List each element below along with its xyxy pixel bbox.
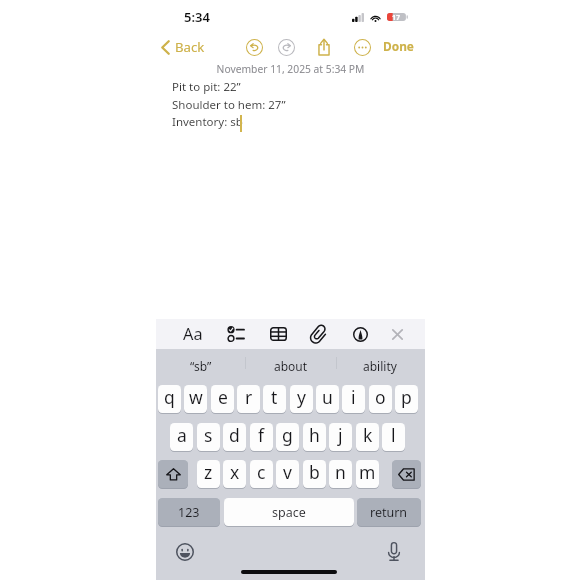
button[interactable]: w xyxy=(184,385,207,413)
button[interactable]: v xyxy=(276,460,299,488)
button[interactable]: s xyxy=(197,423,220,451)
staticText: q xyxy=(164,385,175,409)
staticText: l xyxy=(391,423,396,447)
staticText: n xyxy=(335,460,346,484)
staticText: r xyxy=(245,385,253,409)
button[interactable]: i xyxy=(342,385,365,413)
button[interactable]: Attach xyxy=(303,319,333,349)
staticText: t xyxy=(271,385,278,409)
button[interactable]: Close xyxy=(382,319,412,349)
button[interactable]: Markup xyxy=(345,319,375,349)
staticText: 123 xyxy=(178,504,200,521)
button[interactable]: Checklist xyxy=(220,319,250,349)
staticText: a xyxy=(177,423,187,447)
staticText: space xyxy=(272,504,306,521)
button[interactable]: Back xyxy=(161,34,205,60)
button[interactable]: Done xyxy=(383,35,414,59)
button[interactable]: c xyxy=(250,460,273,488)
staticText: November 11, 2025 at 5:34 PM xyxy=(156,62,425,76)
staticText: Inventory: sb xyxy=(172,114,243,130)
button[interactable]: ability xyxy=(336,354,424,377)
button[interactable]: Emoji xyxy=(172,539,198,565)
staticText: k xyxy=(363,423,373,447)
button[interactable]: k xyxy=(356,423,379,451)
button[interactable]: Dictate xyxy=(381,539,407,565)
staticText: ability xyxy=(363,358,397,374)
button[interactable]: q xyxy=(158,385,181,413)
button[interactable]: Numbers xyxy=(158,498,220,526)
button[interactable]: Shift xyxy=(158,460,188,488)
button[interactable]: about xyxy=(247,354,335,377)
staticText: i xyxy=(351,385,356,409)
button[interactable]: l xyxy=(382,423,405,451)
button[interactable]: x xyxy=(223,460,246,488)
button[interactable]: Share xyxy=(312,35,336,59)
button[interactable]: Backspace xyxy=(392,460,421,488)
button[interactable]: t xyxy=(263,385,286,413)
staticText: p xyxy=(401,385,412,409)
staticText: f xyxy=(258,423,265,447)
button[interactable]: “sb” xyxy=(157,354,245,377)
button[interactable]: Table xyxy=(263,319,293,349)
staticText: 17 xyxy=(392,13,401,21)
button[interactable]: b xyxy=(303,460,326,488)
staticText: d xyxy=(229,423,240,447)
staticText: w xyxy=(189,385,203,409)
staticText: h xyxy=(309,423,320,447)
button[interactable]: f xyxy=(250,423,273,451)
button[interactable]: g xyxy=(276,423,299,451)
staticText: Shoulder to hem: 27” xyxy=(172,97,286,113)
staticText: Back xyxy=(175,38,205,56)
staticText: y xyxy=(297,385,306,409)
staticText: Done xyxy=(383,38,414,54)
staticText: m xyxy=(359,460,376,484)
staticText: s xyxy=(204,423,213,447)
button[interactable]: Return xyxy=(357,498,421,526)
staticText: x xyxy=(230,460,240,484)
staticText: j xyxy=(338,423,343,447)
staticText: Pit to pit: 22” xyxy=(172,79,241,95)
staticText: return xyxy=(370,504,408,521)
staticText: Aa xyxy=(183,323,203,345)
staticText: g xyxy=(282,423,293,447)
button[interactable]: p xyxy=(395,385,418,413)
button[interactable]: Undo xyxy=(242,35,266,59)
button[interactable]: r xyxy=(237,385,260,413)
button[interactable]: j xyxy=(329,423,352,451)
button[interactable]: u xyxy=(316,385,339,413)
button[interactable]: h xyxy=(303,423,326,451)
button[interactable]: e xyxy=(211,385,234,413)
button[interactable]: n xyxy=(329,460,352,488)
button[interactable]: More xyxy=(350,35,374,59)
button[interactable]: a xyxy=(170,423,193,451)
button[interactable]: Format xyxy=(178,319,208,349)
button[interactable]: m xyxy=(356,460,379,488)
button[interactable]: z xyxy=(197,460,220,488)
staticText: about xyxy=(274,358,308,374)
button[interactable]: Redo xyxy=(274,35,298,59)
staticText: o xyxy=(375,385,386,409)
staticText: v xyxy=(283,460,292,484)
staticText: z xyxy=(204,460,213,484)
staticText: b xyxy=(309,460,320,484)
button[interactable]: d xyxy=(223,423,246,451)
staticText: 5:34 xyxy=(184,8,210,26)
button[interactable]: o xyxy=(369,385,392,413)
staticText: e xyxy=(218,385,228,409)
staticText: u xyxy=(322,385,333,409)
button[interactable]: y xyxy=(290,385,313,413)
staticText: “sb” xyxy=(190,358,212,374)
button[interactable]: space xyxy=(224,498,354,526)
staticText: c xyxy=(257,460,266,484)
